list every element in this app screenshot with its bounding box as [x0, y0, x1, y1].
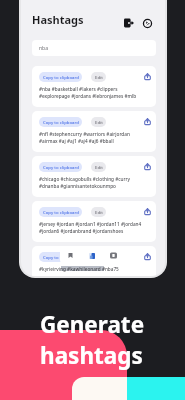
staticText: Copy to clipboard	[43, 119, 79, 125]
button[interactable]: Copy to clipboard	[39, 252, 82, 262]
staticText: Hashtags	[32, 12, 84, 27]
button[interactable]: Copy to clipboard	[39, 162, 82, 172]
button[interactable]: Share	[142, 71, 153, 82]
button[interactable]: Copy to clipboard	[39, 207, 82, 217]
button[interactable]: Edit	[91, 117, 106, 127]
staticText: #nfl #stephencurry #warriors #airjordan …	[39, 131, 130, 145]
staticText: #nba #basketball #lakers #clippers #expl…	[39, 86, 137, 100]
button[interactable]: nba	[32, 40, 156, 56]
button[interactable]: Copy to clipboard	[32, 201, 156, 242]
staticText: #kyrieirving #kawhileonard #nba75	[39, 266, 119, 272]
staticText: Copy to clipboard	[43, 164, 79, 170]
button[interactable]: Copy to clipboard	[32, 246, 156, 276]
staticText: Copy to clipboard	[43, 254, 79, 260]
button[interactable]: Copy to clipboard	[39, 72, 82, 82]
button[interactable]: Copy to clipboard	[39, 117, 82, 127]
button[interactable]: Translate	[86, 250, 97, 261]
staticText: Copy to clipboard	[43, 209, 79, 215]
staticText: #chicago #chicagobulls #clothing #curry …	[39, 176, 130, 190]
button[interactable]: Copy to clipboard	[32, 156, 156, 197]
staticText: hashtags	[40, 340, 143, 371]
button[interactable]: Edit	[91, 252, 106, 262]
staticText: Edit	[95, 74, 103, 80]
staticText: Generate	[40, 309, 145, 340]
button[interactable]: Bookmark	[65, 250, 76, 261]
button[interactable]: Share	[142, 206, 153, 217]
button[interactable]: Edit	[91, 207, 106, 217]
button[interactable]: Remove ads	[140, 16, 154, 30]
staticText: Copy to clipboard	[43, 74, 79, 80]
button[interactable]: Share	[142, 251, 153, 262]
button[interactable]: Share	[142, 161, 153, 172]
button[interactable]: Copy to clipboard	[32, 66, 156, 107]
staticText: nba	[39, 45, 48, 52]
button[interactable]: Edit	[91, 162, 106, 172]
button[interactable]: Copy to clipboard	[32, 111, 156, 152]
staticText: Edit	[95, 119, 103, 125]
button[interactable]: More options	[108, 250, 119, 261]
button[interactable]: Edit	[91, 72, 106, 82]
staticText: Edit	[95, 209, 103, 215]
button[interactable]: Share	[142, 116, 153, 127]
staticText: Edit	[95, 164, 103, 170]
button[interactable]: Export	[122, 16, 136, 30]
staticText: #jersey #jordan #jordan1 #jordan11 #jord…	[39, 221, 142, 235]
